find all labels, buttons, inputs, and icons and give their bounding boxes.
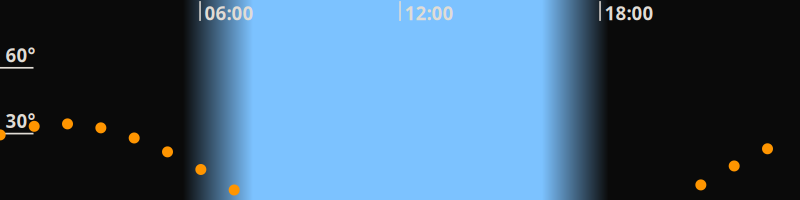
- staticText: 30°: [5, 108, 35, 133]
- staticText: 12:00: [405, 0, 454, 25]
- staticText: 60°: [5, 43, 35, 67]
- staticText: 18:00: [605, 0, 654, 25]
- staticText: 06:00: [205, 0, 254, 25]
